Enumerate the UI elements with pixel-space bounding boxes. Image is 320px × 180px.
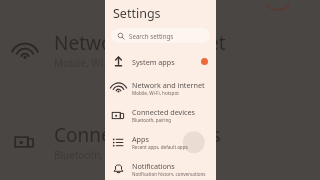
- staticText: Notifications: [132, 161, 175, 171]
- button[interactable]: Connected devices: [105, 103, 216, 127]
- staticText: Recent apps, default apps: [132, 144, 188, 150]
- staticText: Mobile, Wi-Fi, hotspot: [54, 56, 156, 70]
- staticText: Network and internet: [132, 80, 205, 90]
- button[interactable]: Apps: [105, 130, 216, 154]
- button[interactable]: Network and internet: [105, 76, 216, 100]
- staticText: Search settings: [129, 32, 174, 40]
- button[interactable]: Network & internet: [0, 30, 320, 70]
- staticText: Apps: [132, 134, 149, 144]
- staticText: Mobile, Wi-Fi, hotspot: [132, 90, 179, 96]
- staticText: Bluetooth, pairing: [132, 117, 172, 123]
- staticText: Connected devices: [54, 122, 221, 148]
- button[interactable]: System apps updater: [105, 51, 216, 72]
- button[interactable]: Notifications: [105, 157, 216, 180]
- button[interactable]: Search settings: [111, 28, 210, 43]
- staticText: Notification history, conversations: [132, 171, 206, 176]
- staticText: Settings: [113, 5, 161, 22]
- staticText: System apps updater: [132, 57, 201, 67]
- staticText: Connected devices: [132, 107, 195, 117]
- staticText: Network & internet: [54, 30, 226, 56]
- staticText: Bluetooth, pairing: [54, 148, 140, 162]
- button[interactable]: Connected devices: [0, 122, 320, 162]
